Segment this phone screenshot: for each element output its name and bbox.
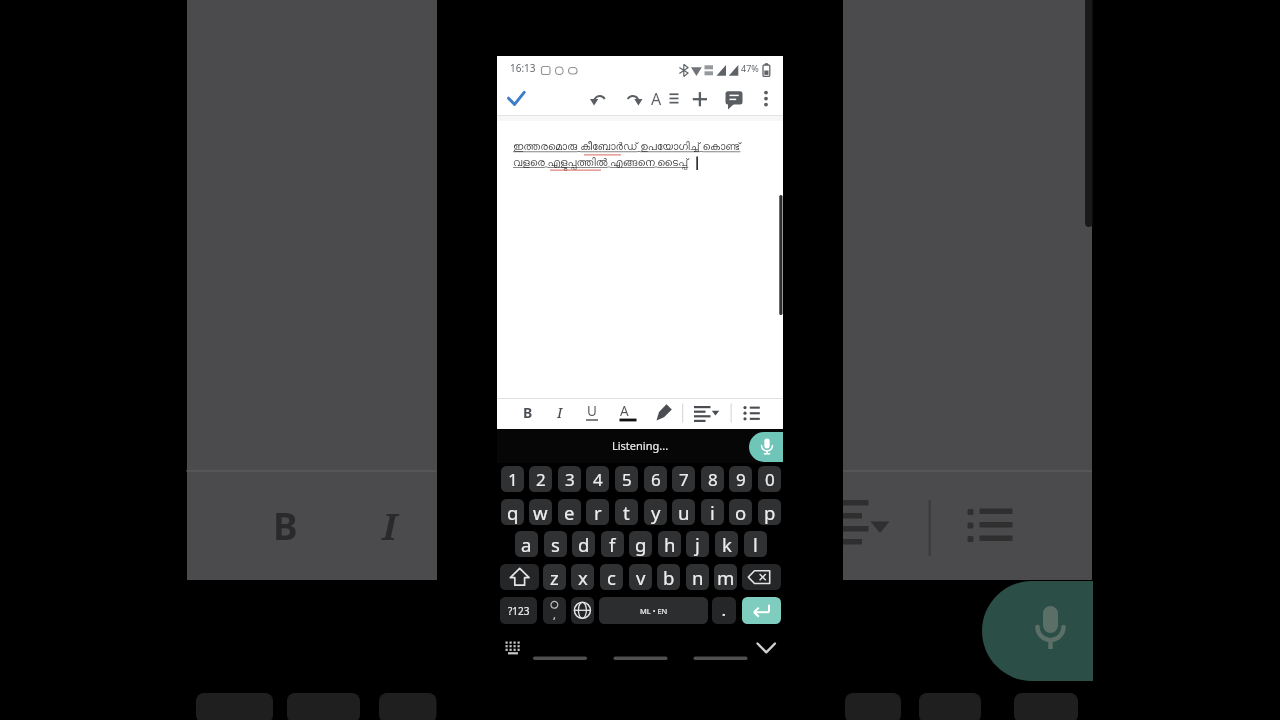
staticText: m	[717, 565, 735, 590]
staticText: 0	[765, 468, 775, 491]
button[interactable]: x	[571, 564, 594, 590]
button[interactable]: 4	[586, 466, 609, 492]
staticText: I	[557, 403, 563, 422]
staticText: x	[578, 565, 588, 590]
button[interactable]: m	[714, 564, 737, 590]
button[interactable]: i	[701, 499, 724, 525]
button[interactable]	[619, 85, 647, 113]
button[interactable]	[517, 399, 541, 425]
staticText: i	[710, 500, 715, 525]
button[interactable]	[719, 85, 747, 113]
staticText: r	[594, 500, 602, 525]
button[interactable]	[500, 636, 526, 660]
staticText: 9	[736, 468, 746, 491]
staticText: z	[550, 565, 559, 590]
button[interactable]	[503, 85, 531, 113]
button[interactable]: 9	[729, 466, 752, 492]
staticText: ഇത്തരമൊരു കീബോർഡ് ഉപയോഗിച്ച് കൊണ്ട് വളരെ…	[513, 139, 741, 169]
staticText: f	[609, 532, 616, 557]
button[interactable]: q	[501, 499, 524, 525]
staticText: A	[651, 88, 662, 110]
button[interactable]: j	[686, 531, 709, 557]
button[interactable]: l	[744, 531, 767, 557]
staticText: y	[651, 500, 661, 525]
button[interactable]: 6	[644, 466, 667, 492]
button[interactable]: y	[644, 499, 667, 525]
staticText: B	[523, 403, 533, 422]
staticText: 1	[508, 468, 518, 491]
button[interactable]: b	[657, 564, 680, 590]
staticText: 8	[708, 468, 718, 491]
button[interactable]	[500, 564, 539, 590]
button[interactable]	[581, 399, 605, 425]
button[interactable]: a	[515, 531, 538, 557]
staticText: b	[663, 565, 675, 590]
staticText: 3	[565, 468, 575, 491]
button[interactable]	[586, 85, 614, 113]
button[interactable]: 8	[701, 466, 724, 492]
button[interactable]	[737, 399, 763, 425]
button[interactable]	[690, 399, 724, 425]
button[interactable]	[752, 85, 780, 113]
button[interactable]: k	[715, 531, 738, 557]
staticText: d	[578, 532, 590, 557]
button[interactable]: 0	[758, 466, 781, 492]
button[interactable]: v	[629, 564, 652, 590]
staticText: e	[564, 500, 575, 525]
staticText: 7	[679, 468, 689, 491]
staticText: Listening...	[612, 438, 669, 453]
button[interactable]: z	[543, 564, 566, 590]
button[interactable]	[613, 399, 637, 425]
button[interactable]: t	[615, 499, 638, 525]
staticText: 2	[536, 468, 546, 491]
button[interactable]: s	[544, 531, 567, 557]
button[interactable]: d	[572, 531, 595, 557]
staticText: 16:13	[510, 61, 536, 75]
button[interactable]	[649, 399, 673, 425]
button[interactable]: n	[686, 564, 709, 590]
staticText: p	[764, 500, 776, 525]
staticText: h	[664, 532, 676, 557]
button[interactable]	[749, 432, 783, 462]
button[interactable]: 3	[558, 466, 581, 492]
staticText: I	[382, 500, 397, 550]
button[interactable]	[742, 597, 781, 624]
staticText: l	[753, 532, 758, 557]
button[interactable]	[549, 399, 573, 425]
button[interactable]: g	[629, 531, 652, 557]
button[interactable]: e	[558, 499, 581, 525]
button[interactable]: 1	[501, 466, 524, 492]
button[interactable]: r	[586, 499, 609, 525]
staticText: k	[722, 532, 732, 557]
staticText: 47%	[741, 62, 759, 74]
button[interactable]: p	[758, 499, 781, 525]
staticText: u	[678, 500, 690, 525]
button[interactable]: 2	[529, 466, 552, 492]
staticText: t	[623, 500, 630, 525]
button[interactable]	[742, 564, 781, 590]
button[interactable]	[571, 597, 594, 624]
button[interactable]: o	[729, 499, 752, 525]
staticText: ,	[553, 607, 556, 622]
button[interactable]: c	[600, 564, 623, 590]
staticText: .	[722, 602, 726, 620]
staticText: c	[607, 565, 616, 590]
button[interactable]: h	[658, 531, 681, 557]
staticText: B	[273, 500, 298, 550]
button[interactable]: ML • EN	[599, 597, 708, 624]
staticText: a	[521, 532, 532, 557]
staticText: s	[551, 532, 560, 557]
button[interactable]	[752, 636, 780, 660]
button[interactable]	[686, 85, 714, 113]
button[interactable]	[543, 597, 566, 624]
button[interactable]: 5	[615, 466, 638, 492]
button[interactable]: 7	[672, 466, 695, 492]
button[interactable]: f	[601, 531, 624, 557]
button[interactable]: ?123	[500, 597, 537, 624]
button[interactable]	[712, 597, 736, 624]
staticText: o	[735, 500, 747, 525]
staticText: w	[533, 500, 548, 525]
button[interactable]: u	[672, 499, 695, 525]
button[interactable]	[650, 85, 678, 113]
button[interactable]: w	[529, 499, 552, 525]
